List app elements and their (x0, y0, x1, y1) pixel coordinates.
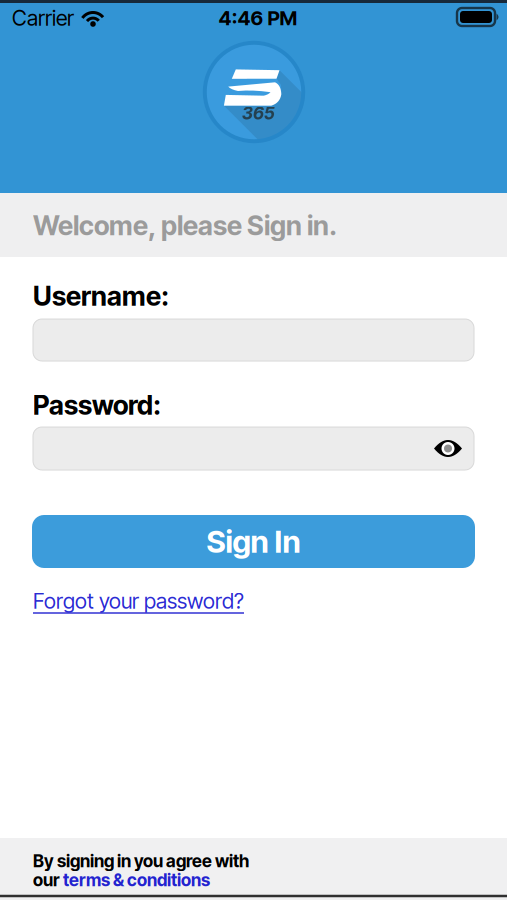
staticText: Password: (33, 389, 161, 421)
staticText: Username: (33, 280, 169, 312)
button[interactable]: our (0, 870, 507, 890)
staticText: Sign In (206, 523, 300, 560)
button[interactable]: Sign In (32, 515, 475, 568)
staticText: By signing in you agree with (33, 851, 249, 871)
staticText: our (33, 870, 63, 890)
button[interactable]: Forgot your password? (0, 588, 507, 614)
staticText: 365 (242, 103, 275, 123)
staticText: Welcome, please Sign in. (33, 210, 337, 241)
staticText: terms & conditions (63, 870, 210, 890)
staticText: 4:46 PM (218, 6, 297, 30)
button[interactable] (434, 438, 462, 458)
staticText: Carrier (12, 5, 74, 31)
button[interactable] (33, 427, 474, 470)
staticText: Forgot your password? (33, 588, 244, 614)
